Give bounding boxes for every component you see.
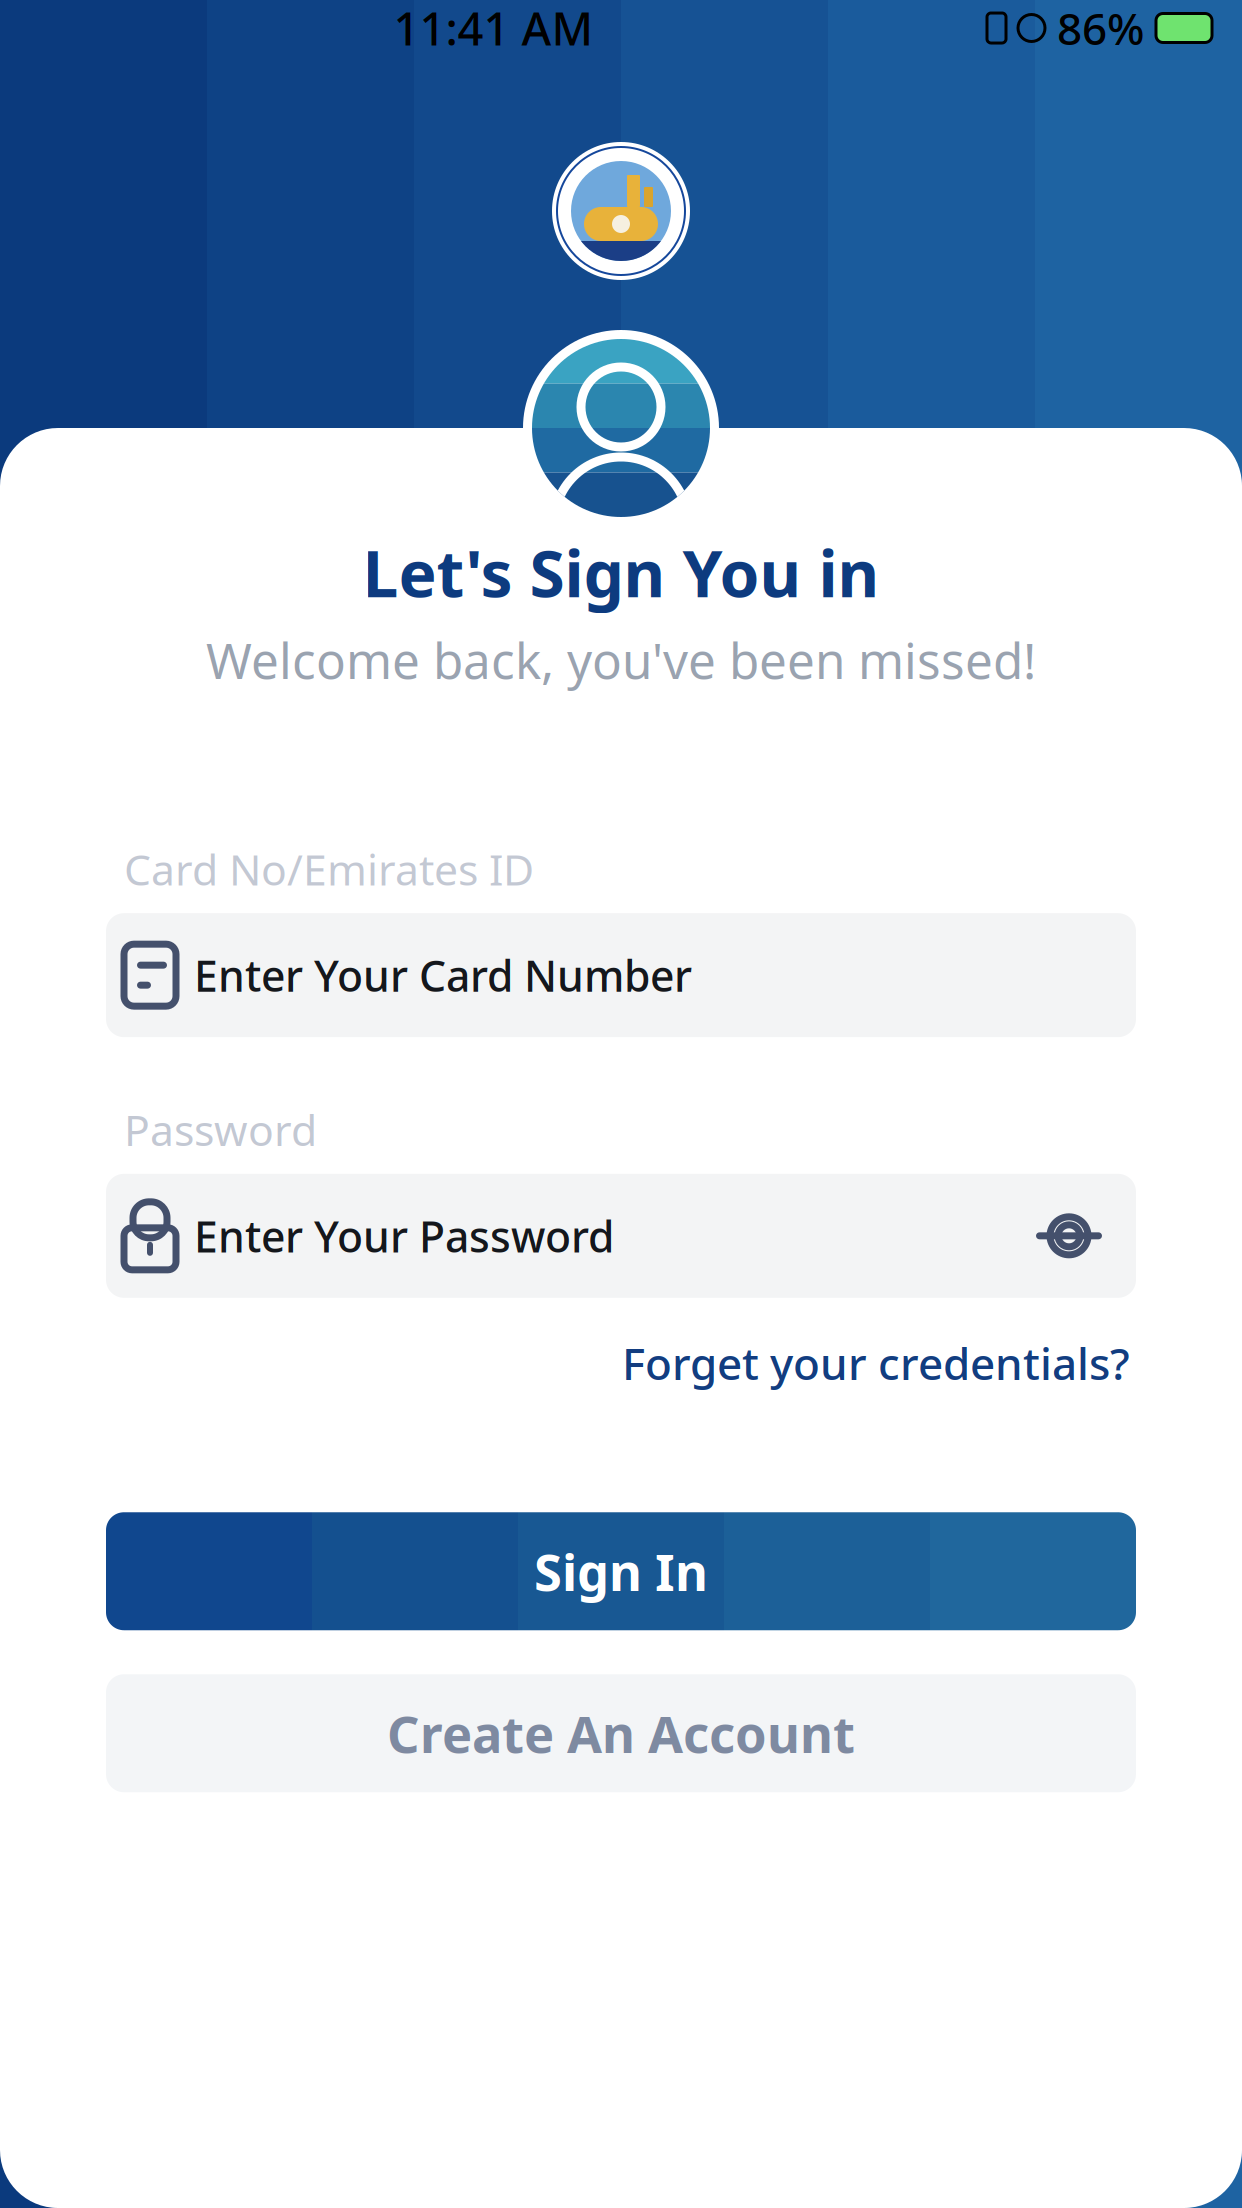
staticText: Enter Your Password <box>194 1207 614 1264</box>
button[interactable]: Forget your credentials? <box>622 1334 1130 1392</box>
staticText: Enter Your Card Number <box>194 947 692 1003</box>
staticText: Card No/Emirates ID <box>124 840 534 897</box>
staticText: Sign In <box>534 1538 708 1605</box>
staticText: Forget your credentials? <box>622 1334 1130 1392</box>
staticText: Let's Sign You in <box>362 530 879 615</box>
button[interactable]: Show password <box>1034 1204 1104 1268</box>
staticText: Password <box>124 1101 317 1158</box>
button[interactable]: Enter Your Card Number <box>106 913 1136 1037</box>
staticText: Create An Account <box>387 1700 855 1767</box>
staticText: 86% <box>1057 0 1144 57</box>
button[interactable]: Sign In <box>106 1512 1136 1630</box>
staticText: 11:41 AM <box>393 0 593 58</box>
staticText: Welcome back, you've been missed! <box>206 627 1036 692</box>
button[interactable]: Create An Account <box>106 1674 1136 1792</box>
